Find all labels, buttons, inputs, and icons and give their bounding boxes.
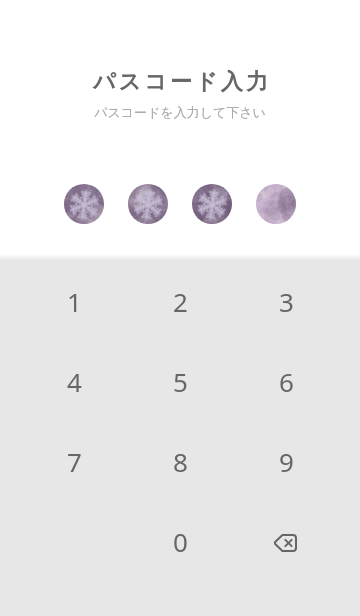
button[interactable]: 9 (240, 421, 360, 501)
button[interactable]: 8 (120, 421, 240, 501)
button[interactable]: 5 (120, 341, 240, 421)
staticText: 7 (67, 444, 82, 479)
button[interactable]: 4 (0, 341, 120, 421)
staticText: 6 (279, 364, 294, 399)
button[interactable]: 2 (120, 261, 240, 341)
other: Backspace (273, 534, 297, 552)
staticText: 2 (173, 284, 188, 319)
staticText: 9 (279, 444, 294, 479)
staticText: 1 (67, 284, 82, 319)
staticText: 0 (173, 524, 188, 559)
staticText: 5 (173, 364, 188, 399)
button[interactable]: 7 (0, 421, 120, 501)
button[interactable]: Backspace (240, 501, 360, 581)
staticText: パスコード入力 (2, 68, 360, 96)
staticText: 8 (173, 444, 188, 479)
button[interactable]: 3 (240, 261, 360, 341)
button[interactable]: 1 (0, 261, 120, 341)
staticText: パスコードを入力して下さい (0, 104, 360, 120)
staticText: 3 (279, 284, 294, 319)
button[interactable]: 0 (120, 501, 240, 581)
button[interactable]: 6 (240, 341, 360, 421)
staticText: 4 (67, 364, 82, 399)
